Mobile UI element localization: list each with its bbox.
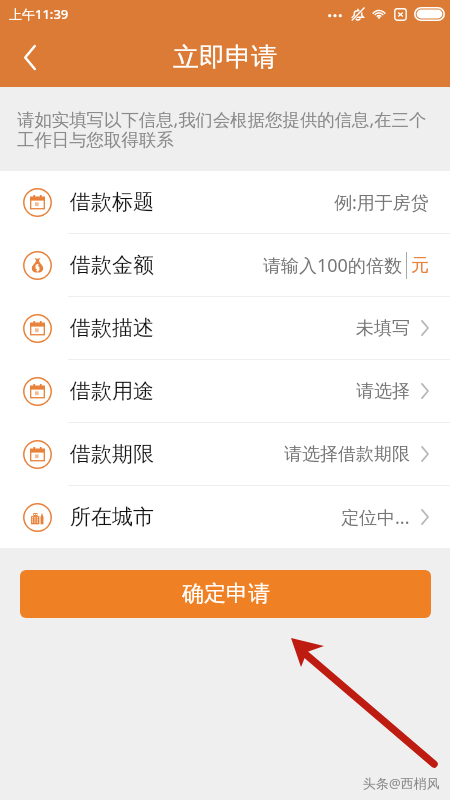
staticText: 请选择 (356, 380, 410, 403)
staticText: 例:用于房贷 (334, 190, 429, 215)
staticText: 请输入100的倍数 (263, 253, 402, 278)
staticText: 请选择借款期限 (284, 443, 410, 466)
button[interactable]: 借款用途 (0, 360, 450, 422)
button[interactable]: 确定申请 (20, 570, 431, 618)
staticText: 借款用途 (70, 378, 154, 404)
staticText: 立即申请 (173, 41, 277, 74)
button[interactable]: 借款标题 (0, 171, 450, 233)
button[interactable]: 所在城市 (0, 486, 450, 548)
button[interactable]: Back (6, 33, 54, 81)
staticText: 上午11:39 (9, 5, 69, 23)
staticText: 确定申请 (182, 580, 270, 608)
staticText: 请如实填写以下信息,我们会根据您提供的信息,在三个 工作日与您取得联系 (17, 107, 427, 151)
staticText: 未填写 (356, 317, 410, 340)
button[interactable]: 借款描述 (0, 297, 450, 359)
staticText: 定位中... (341, 505, 410, 530)
staticText: 头条@西梢风 (363, 774, 440, 792)
button[interactable]: 借款期限 (0, 423, 450, 485)
staticText: 借款金额 (70, 252, 154, 278)
button[interactable]: 借款金额 (0, 234, 450, 296)
staticText: 借款标题 (70, 189, 154, 215)
staticText: 借款期限 (70, 441, 154, 467)
staticText: 元 (411, 254, 429, 277)
staticText: 借款描述 (70, 315, 154, 341)
staticText: 所在城市 (70, 504, 154, 530)
